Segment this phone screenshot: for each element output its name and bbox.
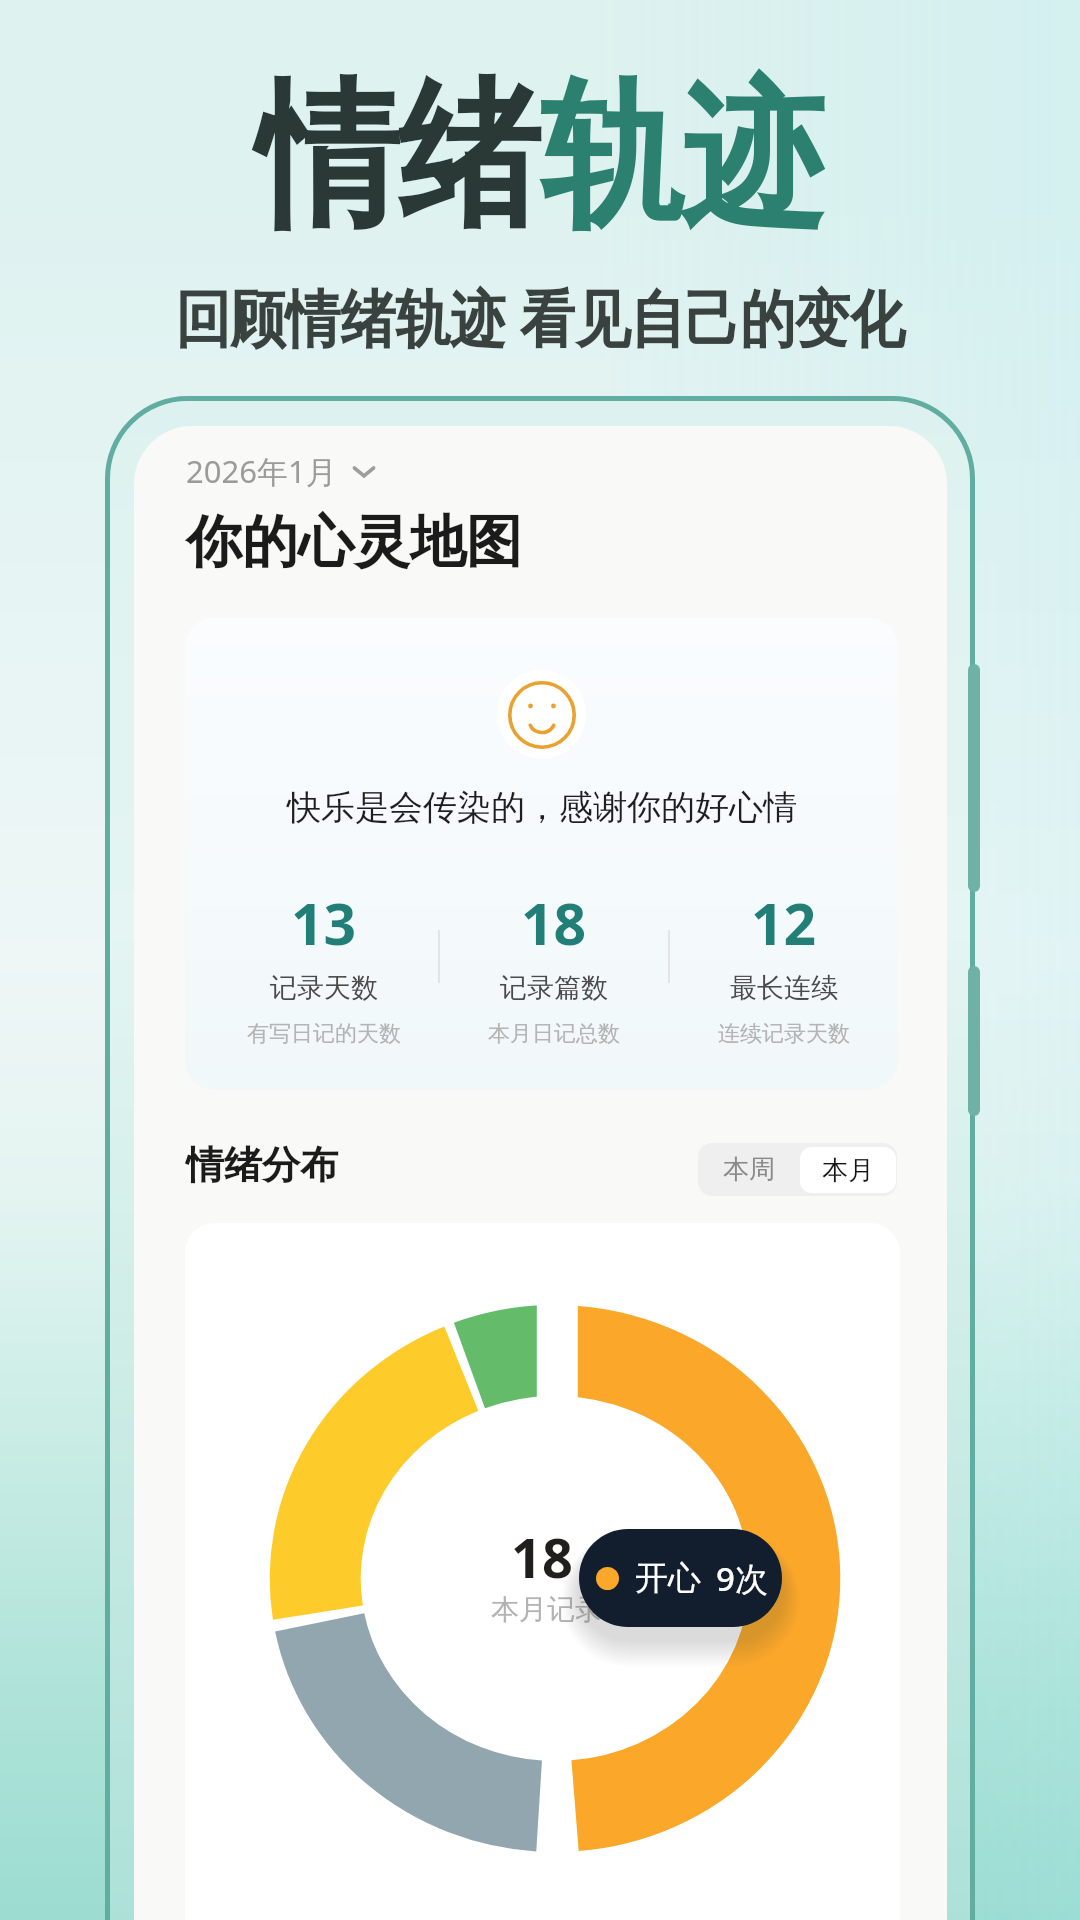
staticText: 回顾情绪轨迹 看见自己的变化 — [0, 274, 1080, 359]
staticText: 你的心灵地图 — [186, 507, 522, 578]
staticText: 情绪 — [256, 58, 540, 257]
staticText: 18 — [521, 884, 587, 962]
staticText: 本周 — [723, 1153, 775, 1186]
button[interactable]: 12 — [670, 884, 898, 1048]
staticText: 记录天数 — [270, 971, 378, 1005]
staticText: 情绪分布 — [186, 1141, 338, 1189]
button[interactable]: 13 — [210, 884, 438, 1048]
button[interactable]: 2026年1月 — [186, 450, 379, 492]
staticText: 18 — [511, 1520, 573, 1594]
button[interactable]: 18 — [440, 884, 668, 1048]
staticText: 9次 — [716, 1556, 768, 1601]
staticText: 本月记录 — [491, 1592, 603, 1627]
staticText: 12 — [751, 884, 817, 962]
staticText: 2026年1月 — [186, 450, 337, 492]
staticText: 开心 — [635, 1557, 701, 1599]
other: 选择月份 — [349, 456, 379, 486]
staticText: 连续记录天数 — [718, 1020, 850, 1048]
staticText: 13 — [291, 884, 357, 962]
staticText: 本月日记总数 — [488, 1020, 620, 1048]
button[interactable]: 本周 — [698, 1143, 800, 1196]
button[interactable]: 本月 — [800, 1147, 896, 1193]
button[interactable]: 快乐是会传染的，感谢你的好心情 — [185, 617, 898, 1090]
staticText: 最长连续 — [730, 971, 838, 1005]
staticText: 有写日记的天数 — [247, 1020, 401, 1048]
staticText: 快乐是会传染的，感谢你的好心情 — [287, 786, 797, 829]
button[interactable]: 开心 — [579, 1529, 782, 1627]
staticText: 本月 — [822, 1154, 874, 1187]
staticText: 记录篇数 — [500, 971, 608, 1005]
staticText: 轨迹 — [540, 58, 824, 257]
